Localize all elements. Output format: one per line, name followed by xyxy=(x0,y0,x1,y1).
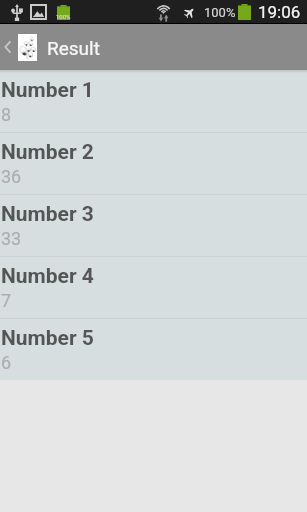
staticText: Number 2 xyxy=(1,140,94,165)
staticText: 100% xyxy=(56,13,71,20)
staticText: 33 xyxy=(1,228,22,249)
staticText: Number 4 xyxy=(1,264,94,289)
staticText: 6 xyxy=(1,352,12,373)
button[interactable]: Number 5 xyxy=(0,318,307,380)
button[interactable]: Number 1 xyxy=(0,70,307,132)
staticText: 36 xyxy=(1,166,22,187)
button[interactable]: Number 2 xyxy=(0,132,307,194)
staticText: 100% xyxy=(204,5,236,20)
button[interactable]: Number 3 xyxy=(0,194,307,256)
staticText: 8 xyxy=(1,104,12,125)
staticText: Number 5 xyxy=(1,326,94,351)
staticText: 19:06 xyxy=(258,2,301,22)
button[interactable]: Number 4 xyxy=(0,256,307,318)
staticText: Result xyxy=(47,37,100,59)
staticText: 7 xyxy=(1,290,12,311)
staticText: Number 3 xyxy=(1,202,94,227)
button[interactable]: Navigate up xyxy=(0,24,307,70)
staticText: Number 1 xyxy=(1,78,94,103)
